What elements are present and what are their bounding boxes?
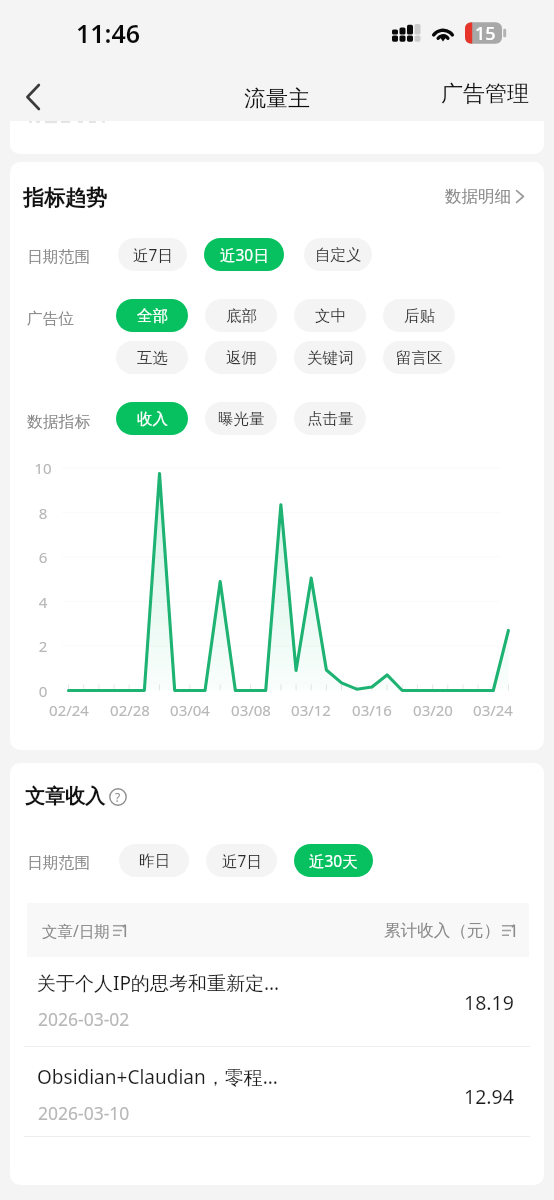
staticText: 广告位 <box>27 309 75 329</box>
staticText: 03/08 <box>216 700 286 720</box>
button[interactable]: 文章/日期 <box>42 920 128 941</box>
staticText: 4 <box>18 592 68 612</box>
button[interactable]: 近30天 <box>294 844 373 877</box>
button[interactable]: 点击量 <box>294 402 366 435</box>
staticText: 日期范围 <box>27 853 91 873</box>
staticText: 2 <box>18 636 68 656</box>
staticText: 近7日 <box>222 850 262 871</box>
staticText: Obsidian+Claudian，零程... <box>37 1064 289 1090</box>
staticText: 流量主 <box>244 85 310 113</box>
button[interactable]: 返佣 <box>205 341 277 374</box>
button[interactable]: 互选 <box>116 341 188 374</box>
button[interactable]: 累计收入（元） <box>384 920 517 941</box>
staticText: 数据指标 <box>27 412 91 432</box>
staticText: 2026-03-10 <box>38 1101 130 1125</box>
staticText: 底部 <box>226 306 257 326</box>
staticText: 近30日 <box>220 244 269 265</box>
staticText: 03/20 <box>398 700 468 720</box>
button[interactable]: 关于个人IP的思考和重新定... <box>10 959 544 1046</box>
button[interactable]: 收入 <box>116 402 188 435</box>
button[interactable]: 后贴 <box>383 299 455 332</box>
button[interactable]: 留言区 <box>383 341 455 374</box>
staticText: 点击量 <box>307 409 354 429</box>
staticText: 15 <box>475 21 496 45</box>
staticText: 近30天 <box>309 850 358 871</box>
button[interactable]: 自定义 <box>304 238 372 271</box>
button[interactable]: 近30日 <box>204 238 284 271</box>
staticText: 0 <box>18 681 68 701</box>
staticText: 03/12 <box>276 700 346 720</box>
staticText: ? <box>115 789 121 805</box>
staticText: 后贴 <box>404 306 435 326</box>
staticText: 文中 <box>315 306 346 326</box>
button[interactable]: 数据明细 <box>435 180 544 213</box>
staticText: 03/16 <box>337 700 407 720</box>
staticText: 全部 <box>137 306 168 326</box>
staticText: 指标趋势 <box>23 185 107 211</box>
staticText: 留言区 <box>396 348 443 368</box>
staticText: 昨日 <box>139 851 170 871</box>
staticText: 03/24 <box>458 700 528 720</box>
staticText: 日期范围 <box>27 247 91 267</box>
staticText: 文章收入 <box>25 784 105 809</box>
button[interactable]: 广告管理 <box>427 0 554 118</box>
button[interactable]: 昨日 <box>119 844 189 877</box>
staticText: 10 <box>18 458 68 478</box>
button[interactable]: 近7日 <box>206 844 277 877</box>
staticText: 返佣 <box>226 348 257 368</box>
staticText: 02/24 <box>34 700 104 720</box>
staticText: 12.94 <box>464 1083 514 1110</box>
staticText: 18.19 <box>464 989 514 1016</box>
staticText: 自定义 <box>315 245 362 265</box>
staticText: 近7日 <box>133 244 173 265</box>
button[interactable]: 关键词 <box>294 341 366 374</box>
staticText: 8 <box>18 503 68 523</box>
button[interactable]: 说明 <box>108 787 128 807</box>
button[interactable]: 文中 <box>294 299 366 332</box>
staticText: 2026-03-02 <box>38 1007 130 1031</box>
staticText: 广告管理 <box>441 80 529 108</box>
button[interactable]: 近7日 <box>118 238 187 271</box>
staticText: 曝光量 <box>218 409 265 429</box>
staticText: 11:46 <box>76 16 141 50</box>
staticText: 互选 <box>137 348 168 368</box>
button[interactable]: 曝光量 <box>205 402 277 435</box>
button[interactable]: 底部 <box>205 299 277 332</box>
staticText: 数据明细 <box>445 186 511 207</box>
staticText: 02/28 <box>95 700 165 720</box>
staticText: 关键词 <box>307 348 354 368</box>
staticText: 03/04 <box>155 700 225 720</box>
button[interactable]: Obsidian+Claudian，零程... <box>10 1053 544 1140</box>
staticText: 收入 <box>137 409 168 429</box>
staticText: 6 <box>18 547 68 567</box>
staticText: 关于个人IP的思考和重新定... <box>37 970 289 996</box>
staticText: 累计收入（元） <box>384 920 501 941</box>
button[interactable]: 全部 <box>116 299 188 332</box>
button[interactable]: Back <box>9 73 57 121</box>
staticText: 文章/日期 <box>42 920 110 941</box>
